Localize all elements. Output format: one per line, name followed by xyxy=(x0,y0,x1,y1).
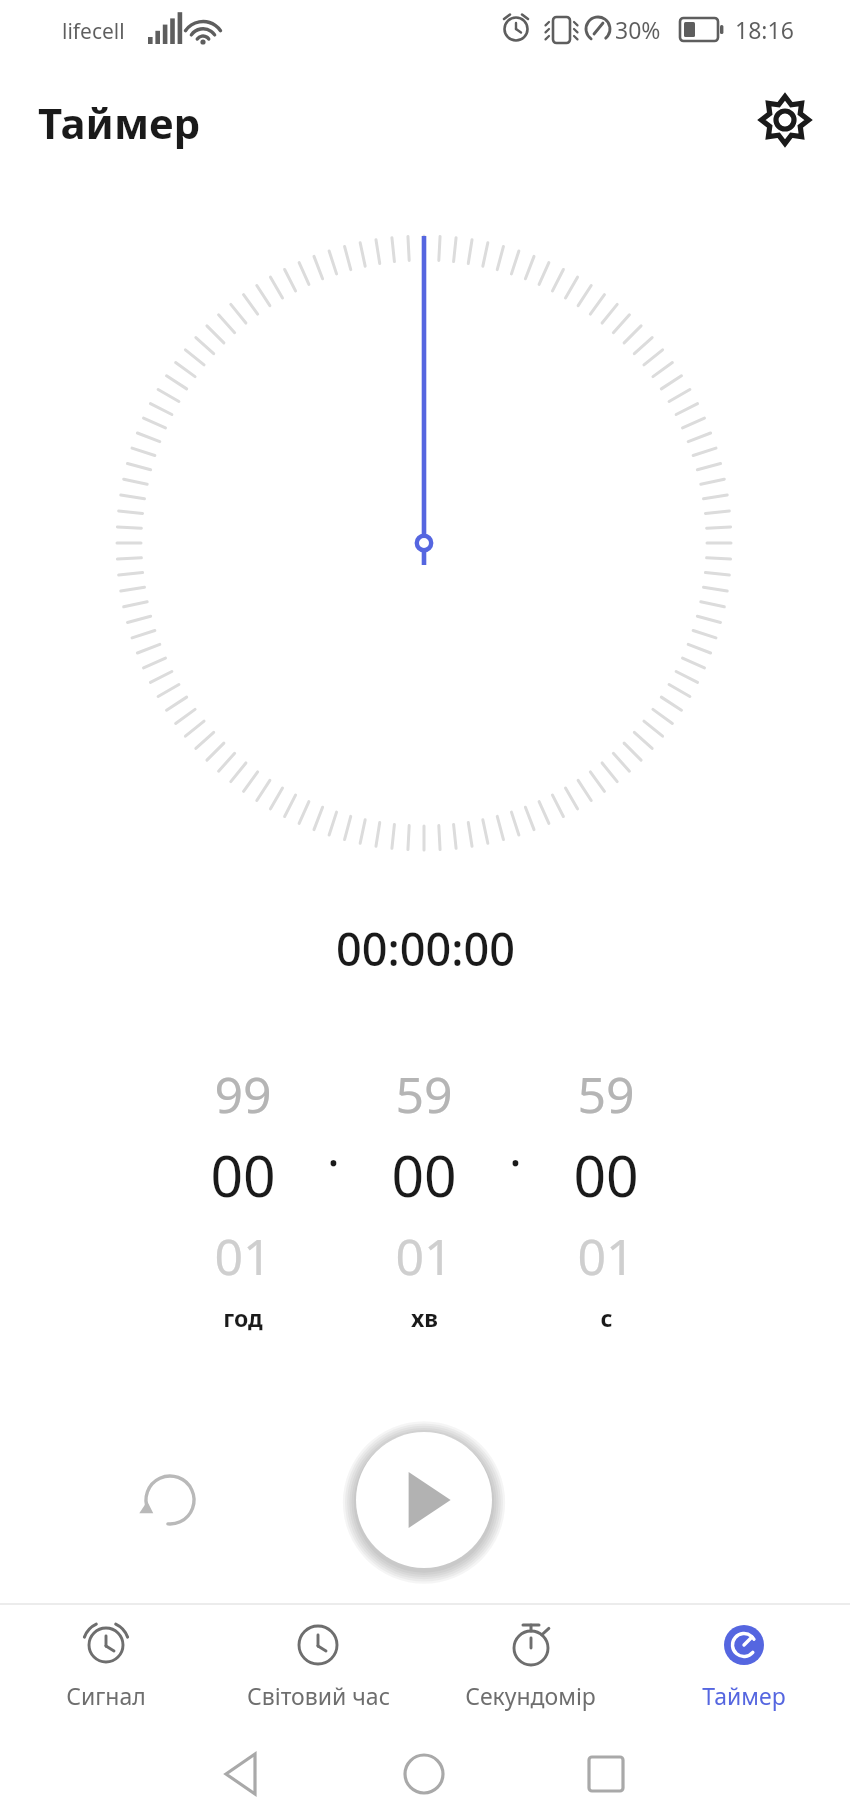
button[interactable]: 99 xyxy=(168,1050,318,1350)
button[interactable]: Сигнал xyxy=(0,1610,212,1730)
staticText: Секундомір xyxy=(465,1680,596,1711)
staticText: : xyxy=(509,1135,522,1175)
staticText: год xyxy=(223,1302,263,1333)
staticText: Світовий час xyxy=(247,1680,390,1711)
staticText: 00 xyxy=(391,1136,457,1214)
staticText: : xyxy=(327,1135,340,1175)
staticText: lifecell xyxy=(62,17,125,46)
button[interactable]: Settings xyxy=(741,76,829,164)
button[interactable]: 59 xyxy=(349,1050,499,1350)
staticText: Сигнал xyxy=(66,1680,146,1711)
staticText: 59 xyxy=(395,1060,453,1128)
staticText: 30% xyxy=(615,14,661,45)
button[interactable]: Секундомір xyxy=(424,1610,637,1730)
staticText: 00:00:00 xyxy=(336,918,515,979)
staticText: 99 xyxy=(214,1060,272,1128)
button[interactable]: 59 xyxy=(531,1050,681,1350)
button[interactable]: Recent apps xyxy=(562,1730,650,1818)
staticText: 01 xyxy=(577,1222,635,1290)
staticText: 01 xyxy=(395,1222,453,1290)
staticText: 00 xyxy=(210,1136,276,1214)
button[interactable]: Home xyxy=(380,1730,468,1818)
staticText: Таймер xyxy=(38,94,201,151)
button[interactable]: Світовий час xyxy=(212,1610,424,1730)
staticText: 01 xyxy=(214,1222,272,1290)
button[interactable]: Таймер xyxy=(637,1610,850,1730)
staticText: Таймер xyxy=(702,1680,786,1711)
button[interactable]: Reset xyxy=(122,1452,218,1548)
staticText: 18:16 xyxy=(735,14,794,45)
staticText: 00 xyxy=(573,1136,639,1214)
button[interactable]: Back xyxy=(198,1730,286,1818)
staticText: хв xyxy=(411,1302,438,1333)
staticText: 59 xyxy=(577,1060,635,1128)
button[interactable]: Start xyxy=(356,1432,492,1568)
staticText: с xyxy=(600,1302,613,1333)
